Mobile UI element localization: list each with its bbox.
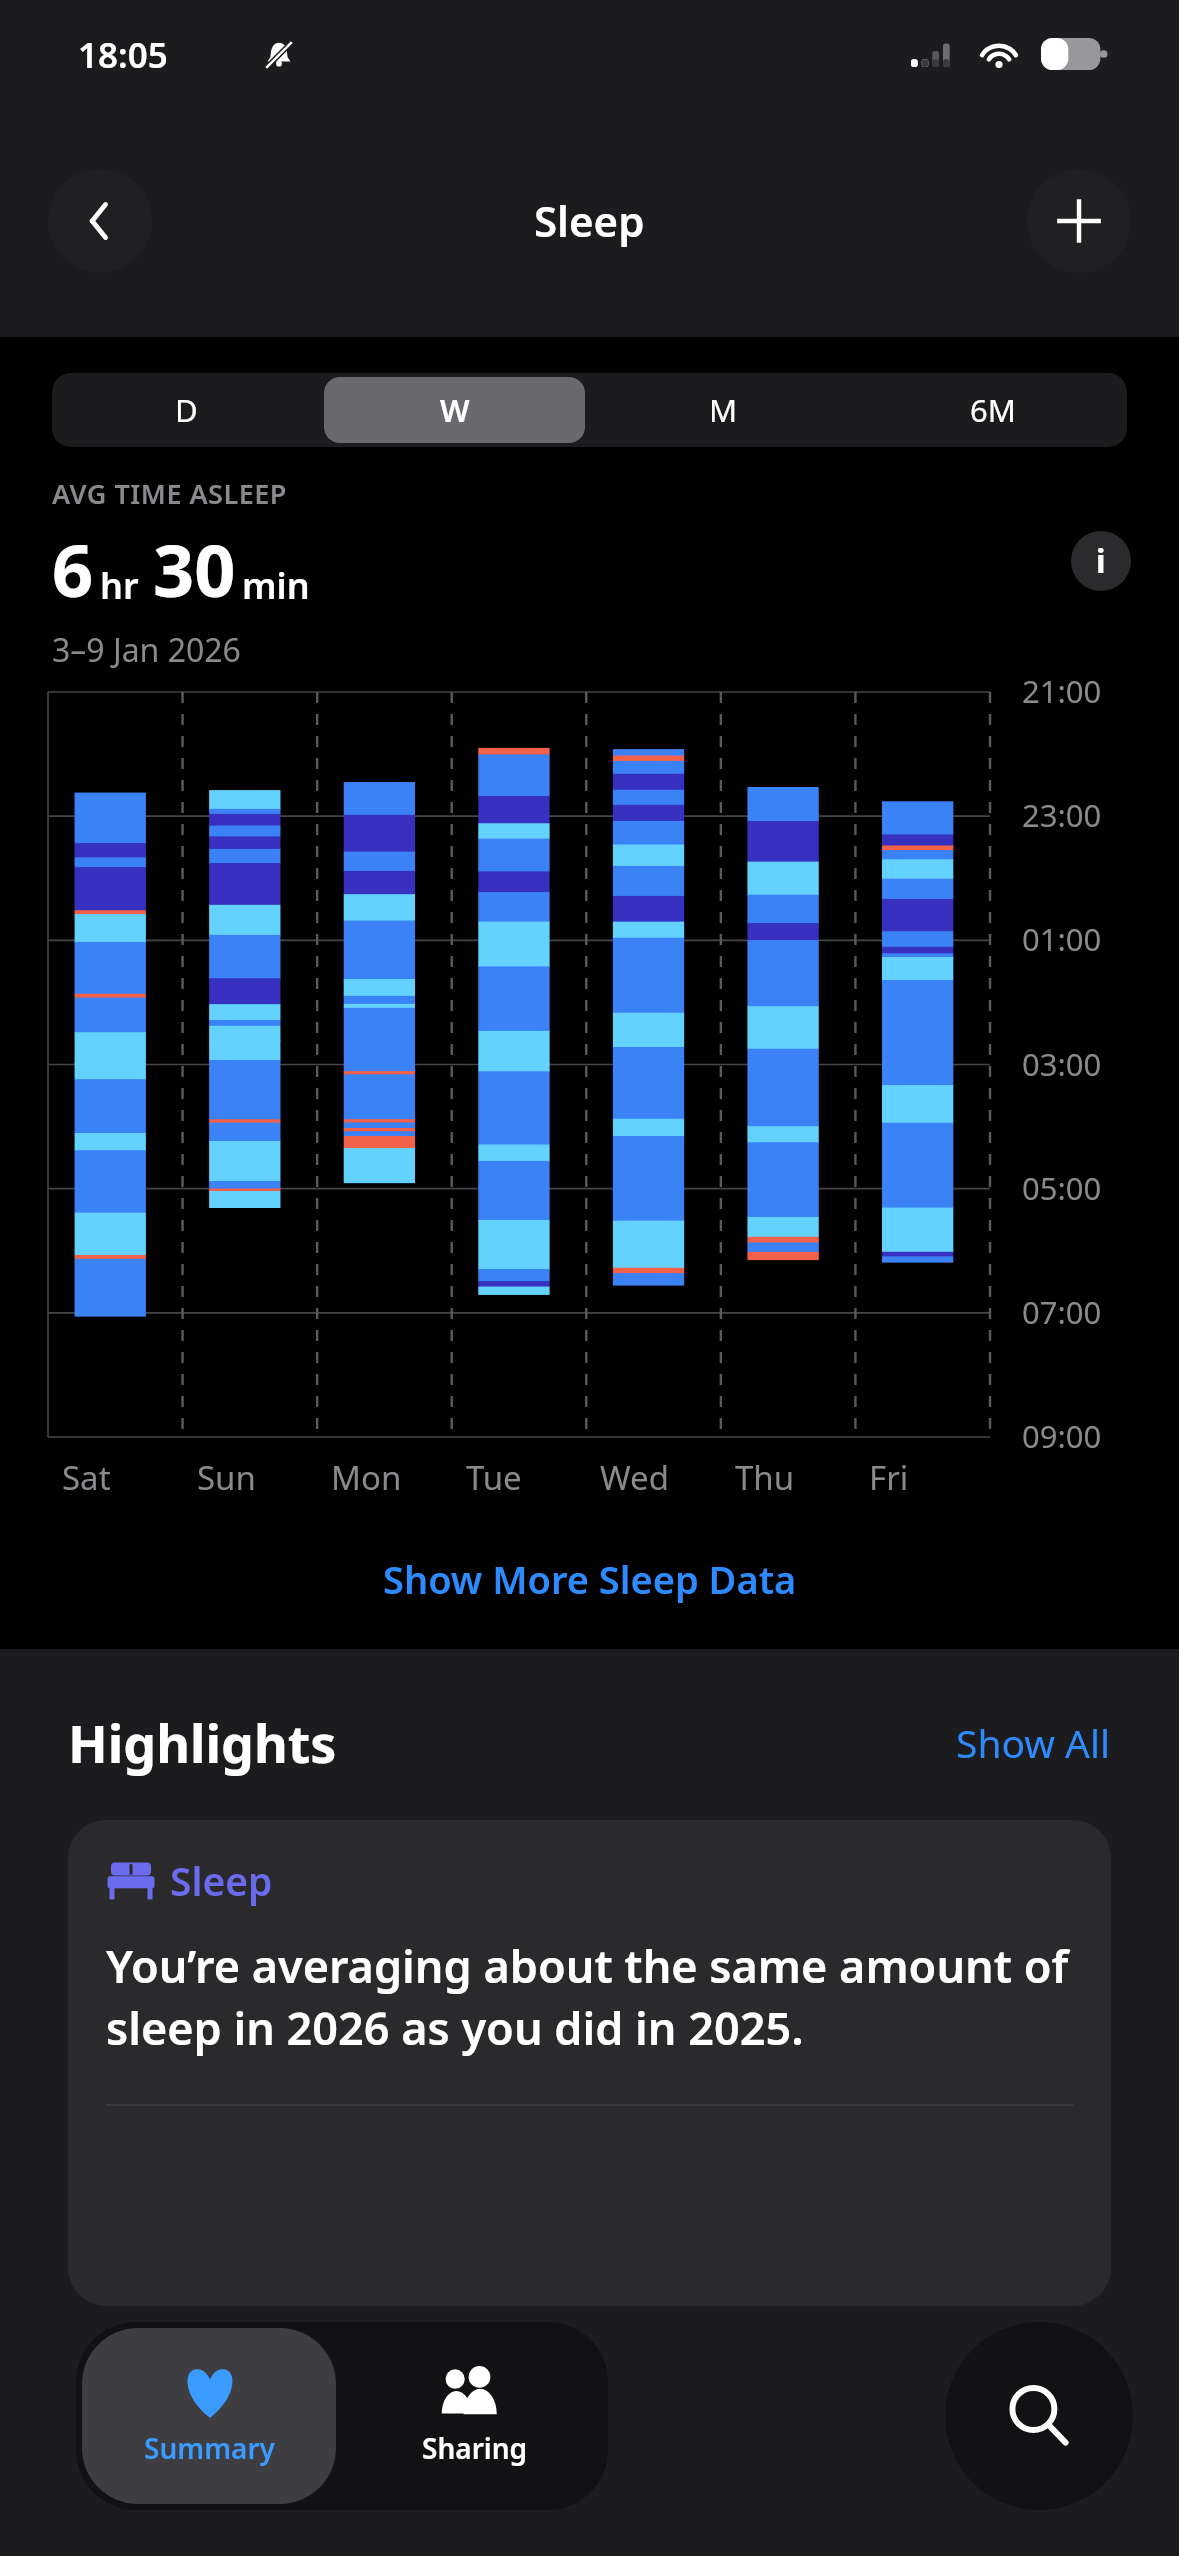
staticText: 23:00 bbox=[1022, 794, 1102, 836]
staticText: 01:00 bbox=[1022, 918, 1102, 960]
staticText: Sat bbox=[62, 1455, 111, 1500]
button[interactable]: M bbox=[593, 377, 854, 443]
button[interactable]: Sleep bbox=[68, 1820, 1111, 2306]
staticText: 6M bbox=[970, 389, 1016, 431]
staticText: 05:00 bbox=[1022, 1167, 1102, 1209]
staticText: 03:00 bbox=[1022, 1043, 1102, 1085]
staticText: AVG TIME ASLEEP bbox=[52, 475, 287, 512]
staticText: Highlights bbox=[68, 1707, 337, 1778]
button[interactable]: Add bbox=[1027, 169, 1131, 273]
button[interactable]: D bbox=[56, 377, 316, 443]
button[interactable]: Show More Sleep Data bbox=[0, 1525, 1179, 1633]
staticText: W bbox=[440, 389, 470, 431]
staticText: 6 bbox=[52, 520, 94, 618]
staticText: hr bbox=[100, 561, 139, 610]
staticText: 09:00 bbox=[1022, 1415, 1102, 1457]
button[interactable]: W bbox=[324, 377, 585, 443]
staticText: 30 bbox=[153, 520, 236, 618]
staticText: D bbox=[175, 389, 198, 431]
staticText: Tue bbox=[466, 1455, 522, 1500]
staticText: Show All bbox=[956, 1716, 1111, 1769]
button[interactable]: Back bbox=[48, 169, 152, 273]
button[interactable]: Info bbox=[1071, 531, 1131, 591]
staticText: i bbox=[1096, 539, 1106, 583]
staticText: Mon bbox=[331, 1455, 402, 1500]
staticText: 18:05 bbox=[78, 31, 168, 79]
staticText: Sleep bbox=[534, 192, 645, 249]
staticText: Sun bbox=[197, 1455, 256, 1500]
staticText: 3–9 Jan 2026 bbox=[52, 628, 241, 672]
button[interactable]: Show All bbox=[956, 1716, 1111, 1769]
staticText: 07:00 bbox=[1022, 1291, 1102, 1333]
staticText: Wed bbox=[600, 1455, 669, 1500]
staticText: Sharing bbox=[422, 2429, 528, 2467]
staticText: 21:00 bbox=[1022, 670, 1102, 712]
button[interactable]: 6M bbox=[862, 377, 1123, 443]
button[interactable]: Sharing bbox=[342, 2322, 608, 2510]
staticText: min bbox=[242, 561, 310, 610]
staticText: M bbox=[709, 389, 738, 431]
staticText: Fri bbox=[869, 1455, 909, 1500]
button[interactable]: Search bbox=[945, 2322, 1133, 2510]
staticText: Summary bbox=[144, 2429, 275, 2467]
staticText: Show More Sleep Data bbox=[383, 1553, 797, 1605]
staticText: Thu bbox=[735, 1455, 795, 1500]
staticText: Sleep bbox=[170, 1854, 273, 1907]
button[interactable]: Summary bbox=[82, 2328, 336, 2504]
staticText: You’re averaging about the same amount o… bbox=[106, 1935, 1073, 2058]
